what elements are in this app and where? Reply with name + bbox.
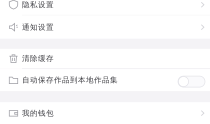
button[interactable]: 隐私设置 [0, 0, 210, 16]
staticText: 我的钱包 [22, 108, 54, 118]
staticText: 清除缓存 [22, 54, 54, 63]
button[interactable]: 清除缓存 [0, 49, 210, 68]
button[interactable]: 通知设置 [0, 15, 210, 39]
staticText: 通知设置 [22, 22, 54, 32]
staticText: 隐私设置 [22, 0, 54, 9]
staticText: 自动保存作品到本地作品集 [22, 75, 118, 85]
button[interactable]: 我的钱包 [0, 102, 210, 124]
button[interactable]: 自动保存作品到本地作品集 [0, 69, 210, 91]
